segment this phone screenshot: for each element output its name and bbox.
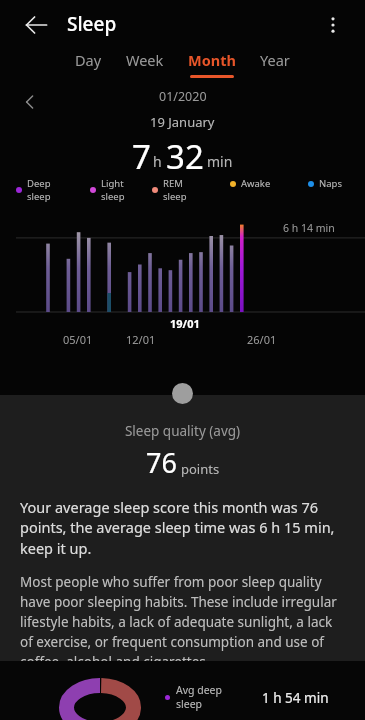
button[interactable]: Day — [75, 50, 102, 75]
button[interactable]: Month — [188, 50, 236, 78]
staticText: h — [153, 152, 162, 171]
button[interactable]: Back — [22, 10, 52, 40]
staticText: 05/01 — [63, 332, 93, 347]
staticText: Sleep quality (avg) — [0, 422, 365, 440]
staticText: Awake — [241, 177, 271, 190]
staticText: 19 January — [150, 113, 215, 131]
staticText: Week — [126, 50, 164, 70]
staticText: sleep — [101, 190, 125, 203]
staticText: Light — [101, 177, 124, 190]
staticText: sleep — [176, 697, 203, 711]
staticText: 01/2020 — [159, 88, 207, 105]
staticText: Naps — [319, 177, 342, 190]
button[interactable]: Week — [126, 50, 164, 75]
staticText: 12/01 — [126, 332, 156, 347]
staticText: Year — [260, 50, 290, 70]
staticText: Month — [188, 50, 236, 70]
staticText: REM — [163, 177, 183, 190]
staticText: 1 h 54 min — [262, 689, 329, 707]
staticText: 32 — [166, 134, 204, 175]
staticText: sleep — [163, 190, 187, 203]
staticText: sleep — [27, 190, 51, 203]
staticText: Most people who suffer from poor sleep q… — [20, 573, 345, 661]
staticText: Your average sleep score this month was … — [20, 497, 345, 559]
staticText: 6 h 14 min — [283, 221, 335, 235]
button[interactable]: More options — [318, 10, 348, 40]
button[interactable]: Previous month — [17, 89, 43, 115]
staticText: points — [181, 460, 220, 478]
staticText: 26/01 — [247, 332, 277, 347]
staticText: Deep — [27, 177, 51, 190]
staticText: 76 — [146, 444, 177, 481]
button[interactable]: Year — [260, 50, 290, 75]
staticText: 19/01 — [170, 316, 200, 331]
button[interactable]: Date slider — [172, 383, 193, 404]
staticText: Day — [75, 50, 102, 70]
staticText: 7 — [132, 134, 151, 175]
staticText: Sleep — [67, 11, 117, 37]
staticText: min — [207, 152, 233, 171]
staticText: Avg deep — [176, 683, 222, 697]
